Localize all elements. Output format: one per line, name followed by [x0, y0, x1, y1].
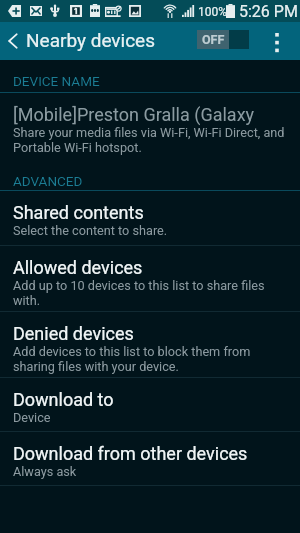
staticText: Share your media files via Wi-Fi, Wi-Fi …: [13, 125, 285, 140]
staticText: [Mobile]Preston Gralla (Galaxy: [13, 104, 255, 125]
button[interactable]: Navigate up: [0, 22, 26, 60]
staticText: with.: [13, 293, 41, 308]
staticText: Select the content to share.: [13, 223, 168, 238]
staticText: 100%: [198, 5, 228, 19]
staticText: Denied devices: [13, 323, 134, 344]
staticText: Download to: [13, 389, 114, 410]
staticText: ADVANCED: [13, 173, 83, 189]
staticText: OFF: [202, 32, 225, 47]
staticText: Nearby devices: [26, 29, 155, 51]
staticText: Add up to 10 devices to this list to sha…: [13, 278, 265, 293]
staticText: sharing files with your device.: [13, 359, 179, 374]
staticText: Allowed devices: [13, 257, 143, 278]
staticText: Download from other devices: [13, 443, 248, 464]
staticText: DEVICE NAME: [13, 73, 100, 89]
button[interactable]: Nearby devices on off switch: [197, 30, 249, 49]
button[interactable]: Download from other devices: [0, 432, 300, 486]
staticText: Device: [13, 410, 51, 425]
button[interactable]: Denied devices: [0, 312, 300, 378]
button[interactable]: Download to: [0, 378, 300, 432]
button[interactable]: More options: [263, 22, 291, 60]
staticText: Always ask: [13, 464, 77, 479]
button[interactable]: Shared contents: [0, 191, 300, 246]
staticText: Add devices to this list to block them f…: [13, 344, 251, 359]
staticText: Shared contents: [13, 202, 144, 223]
staticText: 5:26 PM: [239, 2, 298, 21]
staticText: Portable Wi-Fi hotspot.: [13, 140, 142, 155]
button[interactable]: Allowed devices: [0, 246, 300, 312]
button[interactable]: [Mobile]Preston Gralla (Galaxy: [0, 93, 300, 167]
